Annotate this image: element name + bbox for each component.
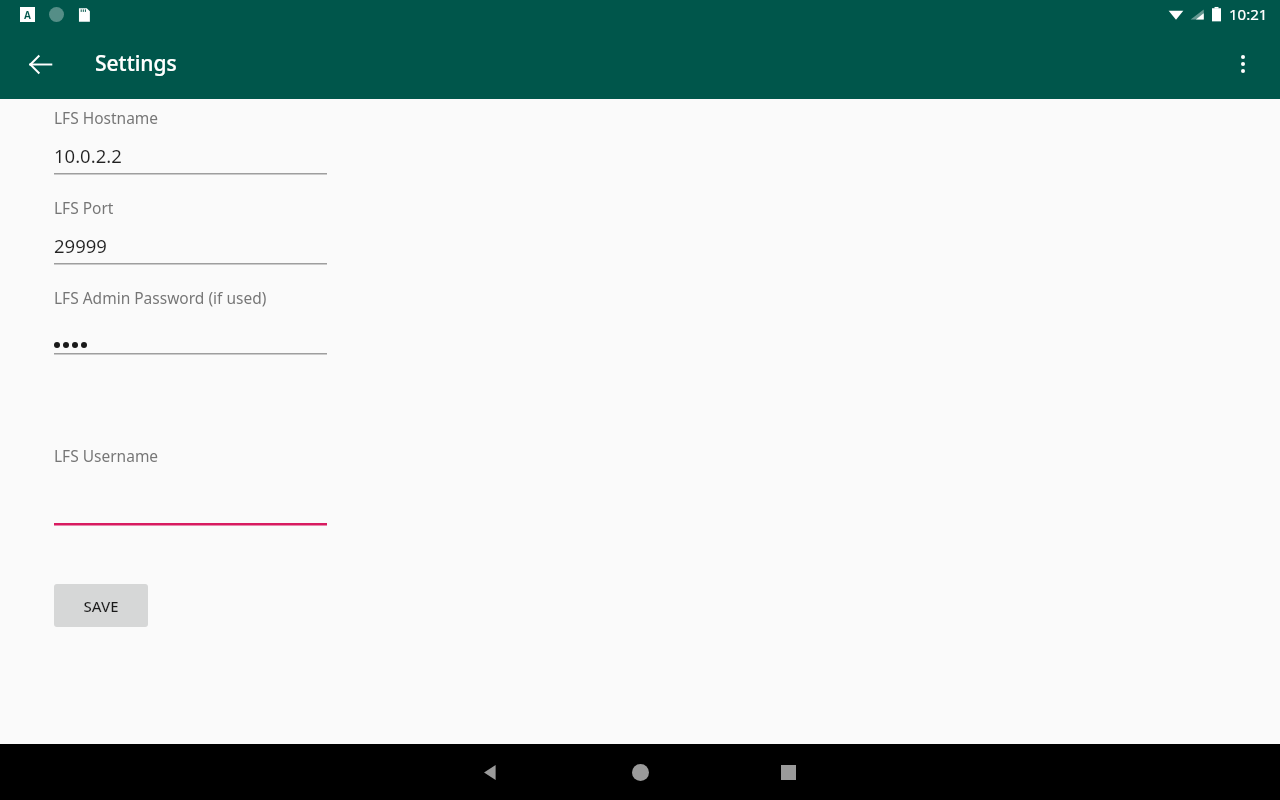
button[interactable]: Home (616, 748, 664, 796)
button[interactable]: LFS Hostname (54, 107, 327, 176)
staticText: Settings (95, 49, 177, 78)
staticText: 10:21 (1229, 4, 1268, 24)
button[interactable]: Back (16, 40, 64, 88)
button[interactable]: LFS Username (54, 445, 327, 526)
staticText: LFS Hostname (54, 107, 159, 128)
button[interactable]: SAVE (54, 584, 148, 627)
button[interactable]: LFS Port (54, 197, 327, 266)
staticText: LFS Username (54, 445, 159, 466)
button[interactable]: LFS Admin Password (if used) (54, 287, 327, 356)
button[interactable]: More options (1219, 40, 1267, 88)
button[interactable]: Recent apps (764, 748, 812, 796)
staticText: A (24, 8, 31, 22)
staticText: 29999 (54, 233, 107, 258)
button[interactable]: Back (466, 748, 514, 796)
staticText: 10.0.2.2 (54, 143, 122, 168)
staticText: LFS Port (54, 197, 114, 218)
staticText: LFS Admin Password (if used) (54, 287, 267, 308)
staticText: SAVE (83, 596, 119, 616)
